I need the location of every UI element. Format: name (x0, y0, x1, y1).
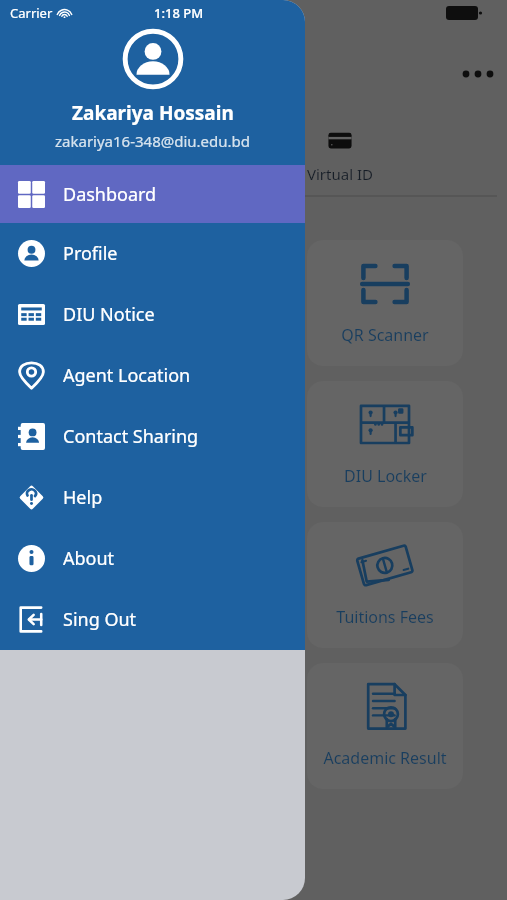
staticText: Academic Result (323, 747, 447, 769)
button[interactable]: Tuitions Fees (307, 522, 463, 648)
button[interactable]: Academic Result (307, 663, 463, 789)
button[interactable]: Virtual ID (280, 118, 400, 190)
button[interactable]: DIU Locker (307, 381, 463, 507)
staticText: Help (63, 485, 103, 510)
staticText: Contact Sharing (63, 424, 199, 449)
button[interactable]: QR Scanner (307, 240, 463, 366)
button[interactable]: Sing Out (0, 589, 305, 650)
staticText: Virtual ID (307, 164, 373, 184)
staticText: Tuitions Fees (336, 606, 434, 628)
staticText: 1:18 PM (154, 4, 204, 22)
button[interactable]: About (0, 528, 305, 589)
staticText: Dashboard (63, 182, 157, 207)
staticText: Sing Out (63, 607, 137, 632)
button[interactable]: Agent Location (0, 345, 305, 406)
button[interactable]: Profile (0, 223, 305, 284)
staticText: Agent Location (63, 363, 191, 388)
staticText: DIU Notice (63, 302, 155, 327)
button[interactable]: Contact Sharing (0, 406, 305, 467)
button[interactable]: DIU Notice (0, 284, 305, 345)
staticText: DIU Locker (344, 465, 427, 487)
staticText: Profile (63, 241, 118, 266)
button[interactable]: Dashboard (0, 165, 305, 223)
staticText: saction (199, 164, 250, 184)
staticText: About (63, 546, 115, 571)
staticText: Carrier (10, 4, 53, 22)
staticText: QR Scanner (341, 324, 429, 346)
staticText: Zakariya Hossain (72, 100, 234, 126)
button[interactable]: Help (0, 467, 305, 528)
button[interactable]: saction (168, 118, 280, 190)
button[interactable]: More options (455, 66, 491, 102)
staticText: zakariya16-348@diu.edu.bd (55, 131, 251, 151)
